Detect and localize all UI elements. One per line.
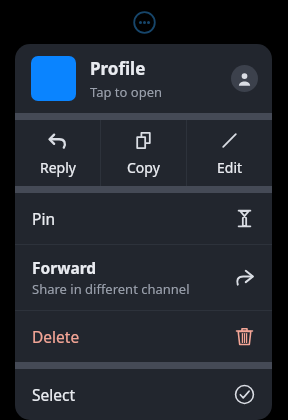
staticText: Share in different channel	[32, 280, 190, 298]
staticText: Pin	[32, 208, 55, 229]
button[interactable]: Delete	[15, 311, 272, 362]
button[interactable]: Edit	[187, 120, 272, 186]
button[interactable]: Profile	[15, 44, 272, 113]
staticText: Edit	[217, 158, 243, 177]
staticText: Copy	[127, 158, 160, 177]
staticText: Tap to open	[90, 83, 163, 101]
staticText: Reply	[40, 158, 76, 177]
staticText: Select	[32, 384, 76, 405]
button[interactable]: Forward	[15, 245, 272, 310]
staticText: Profile	[90, 57, 146, 80]
button[interactable]: Pin	[15, 193, 272, 244]
button[interactable]: Select	[15, 369, 272, 420]
button[interactable]: Copy	[101, 120, 186, 186]
button[interactable]: Reply	[15, 120, 100, 186]
button[interactable]: More options	[133, 11, 156, 34]
staticText: Forward	[32, 257, 97, 278]
staticText: Delete	[32, 326, 80, 347]
